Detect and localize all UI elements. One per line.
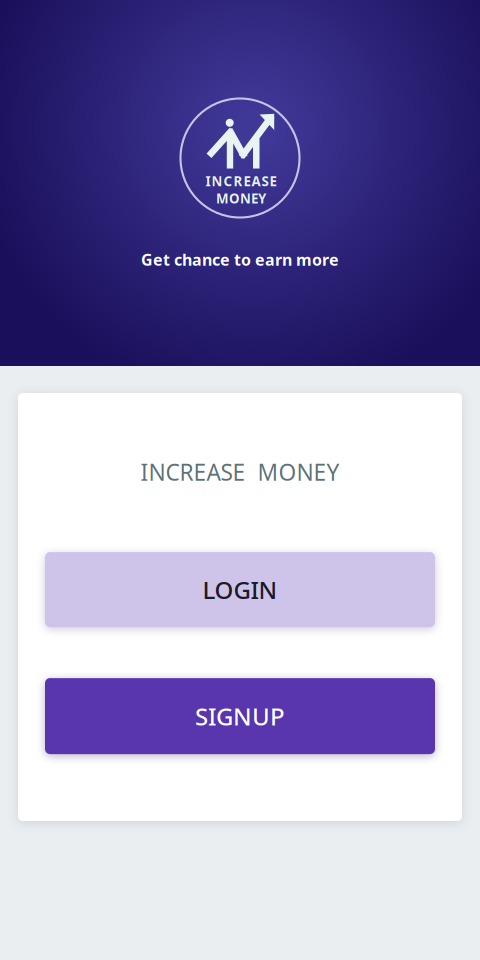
staticText: INCREASE MONEY <box>140 457 339 487</box>
staticText: MONEY <box>216 189 266 207</box>
button[interactable]: LOGIN <box>45 552 435 627</box>
staticText: LOGIN <box>202 574 277 606</box>
staticText: Get chance to earn more <box>141 249 339 270</box>
staticText: I N C R E A S E <box>205 172 276 190</box>
button[interactable]: SIGNUP <box>45 678 435 754</box>
staticText: SIGNUP <box>195 700 285 732</box>
